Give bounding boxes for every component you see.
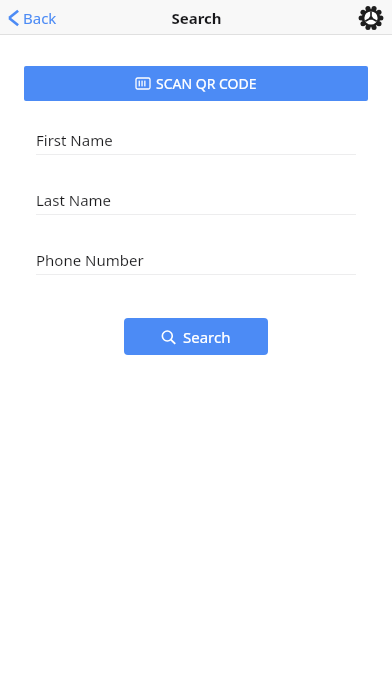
button[interactable]: SCAN QR CODE [24,66,368,101]
button[interactable]: Search [124,318,268,355]
staticText: Back [23,8,57,28]
staticText: SCAN QR CODE [156,74,257,93]
button[interactable]: Settings [350,3,392,33]
button[interactable]: Phone Number [0,245,392,305]
button[interactable]: Back [0,4,67,32]
staticText: Search [171,8,222,28]
button[interactable]: Last Name [0,185,392,245]
staticText: First Name [36,130,113,150]
staticText: Last Name [36,190,112,210]
staticText: Phone Number [36,250,144,270]
button[interactable]: First Name [0,125,392,185]
staticText: Search [183,327,231,347]
